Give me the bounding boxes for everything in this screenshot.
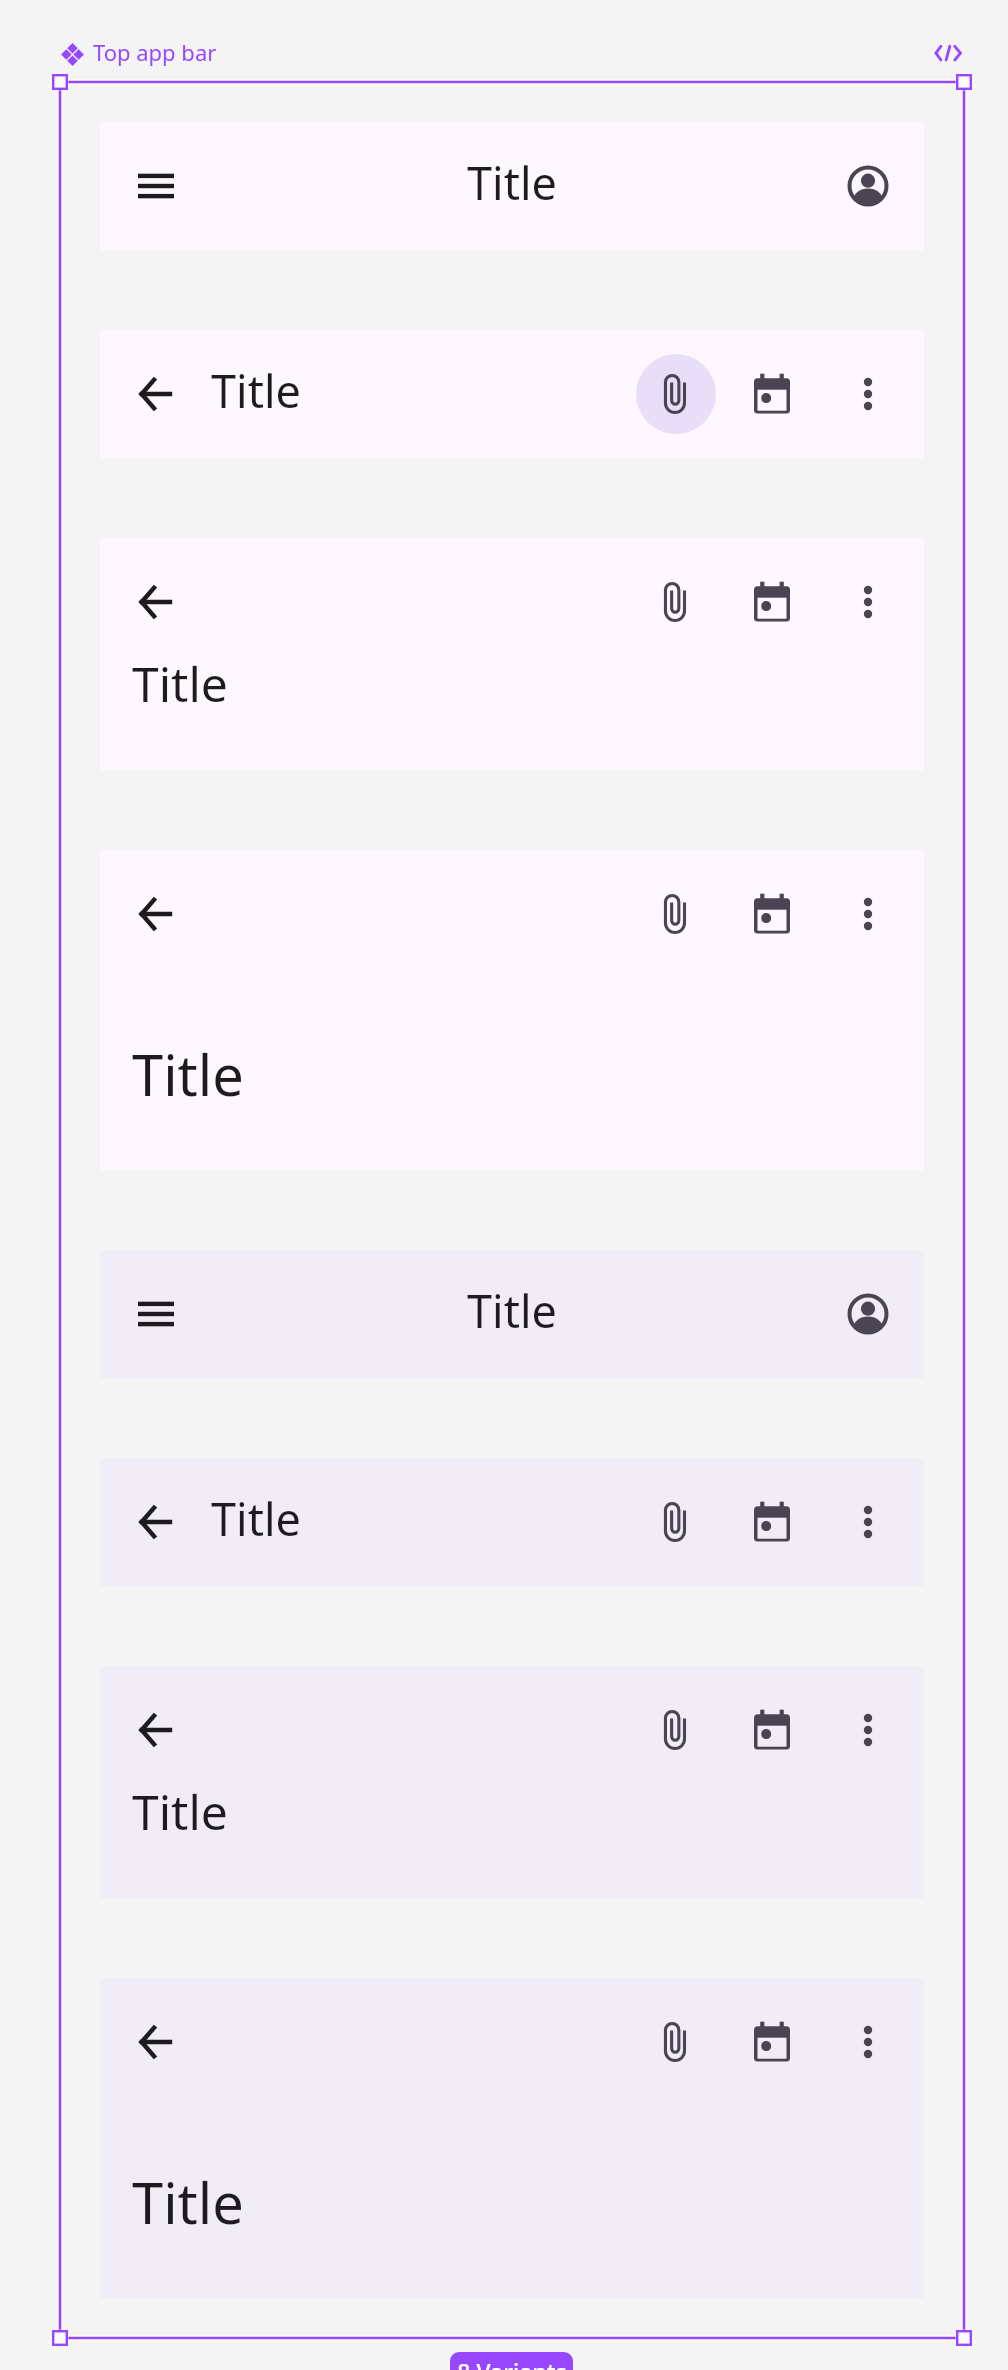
button[interactable]: Attach file — [636, 354, 716, 434]
button[interactable]: Open calendar — [732, 2002, 812, 2082]
button[interactable]: Back — [116, 354, 196, 434]
button[interactable]: More options — [828, 1690, 908, 1770]
staticText: 8 Variants — [457, 2356, 567, 2370]
button[interactable]: 8 Variants — [450, 2352, 573, 2370]
button[interactable]: More options — [828, 354, 908, 434]
button[interactable]: Back — [116, 1482, 196, 1562]
button[interactable]: Open calendar — [732, 562, 812, 642]
button[interactable]: Attach file — [636, 562, 716, 642]
button[interactable]: Attach file — [636, 874, 716, 954]
button[interactable]: More options — [828, 1482, 908, 1562]
button[interactable]: More options — [828, 874, 908, 954]
button[interactable]: Back — [116, 1690, 196, 1770]
button[interactable]: Open calendar — [732, 874, 812, 954]
staticText: Title — [467, 152, 557, 213]
staticText: Title — [211, 360, 301, 421]
staticText: Title — [132, 1036, 244, 1112]
button[interactable]: Account — [828, 146, 908, 226]
staticText: Title — [132, 1779, 228, 1844]
button[interactable]: Back — [116, 874, 196, 954]
staticText: Title — [132, 2164, 244, 2240]
button[interactable]: Open calendar — [732, 1482, 812, 1562]
button[interactable]: Open calendar — [732, 1690, 812, 1770]
button[interactable]: Open navigation menu — [116, 146, 196, 226]
button[interactable]: Account — [828, 1274, 908, 1354]
button[interactable]: Attach file — [636, 2002, 716, 2082]
button[interactable]: Attach file — [636, 1482, 716, 1562]
button[interactable]: Open navigation menu — [116, 1274, 196, 1354]
button[interactable]: More options — [828, 2002, 908, 2082]
button[interactable]: Back — [116, 562, 196, 642]
staticText: Title — [211, 1488, 301, 1549]
staticText: Title — [132, 651, 228, 716]
button[interactable]: More options — [828, 562, 908, 642]
button[interactable]: Back — [116, 2002, 196, 2082]
button[interactable]: View code — [932, 38, 963, 69]
button[interactable]: Open calendar — [732, 354, 812, 434]
staticText: Top app bar — [93, 37, 217, 67]
button[interactable]: Attach file — [636, 1690, 716, 1770]
staticText: Title — [467, 1280, 557, 1341]
